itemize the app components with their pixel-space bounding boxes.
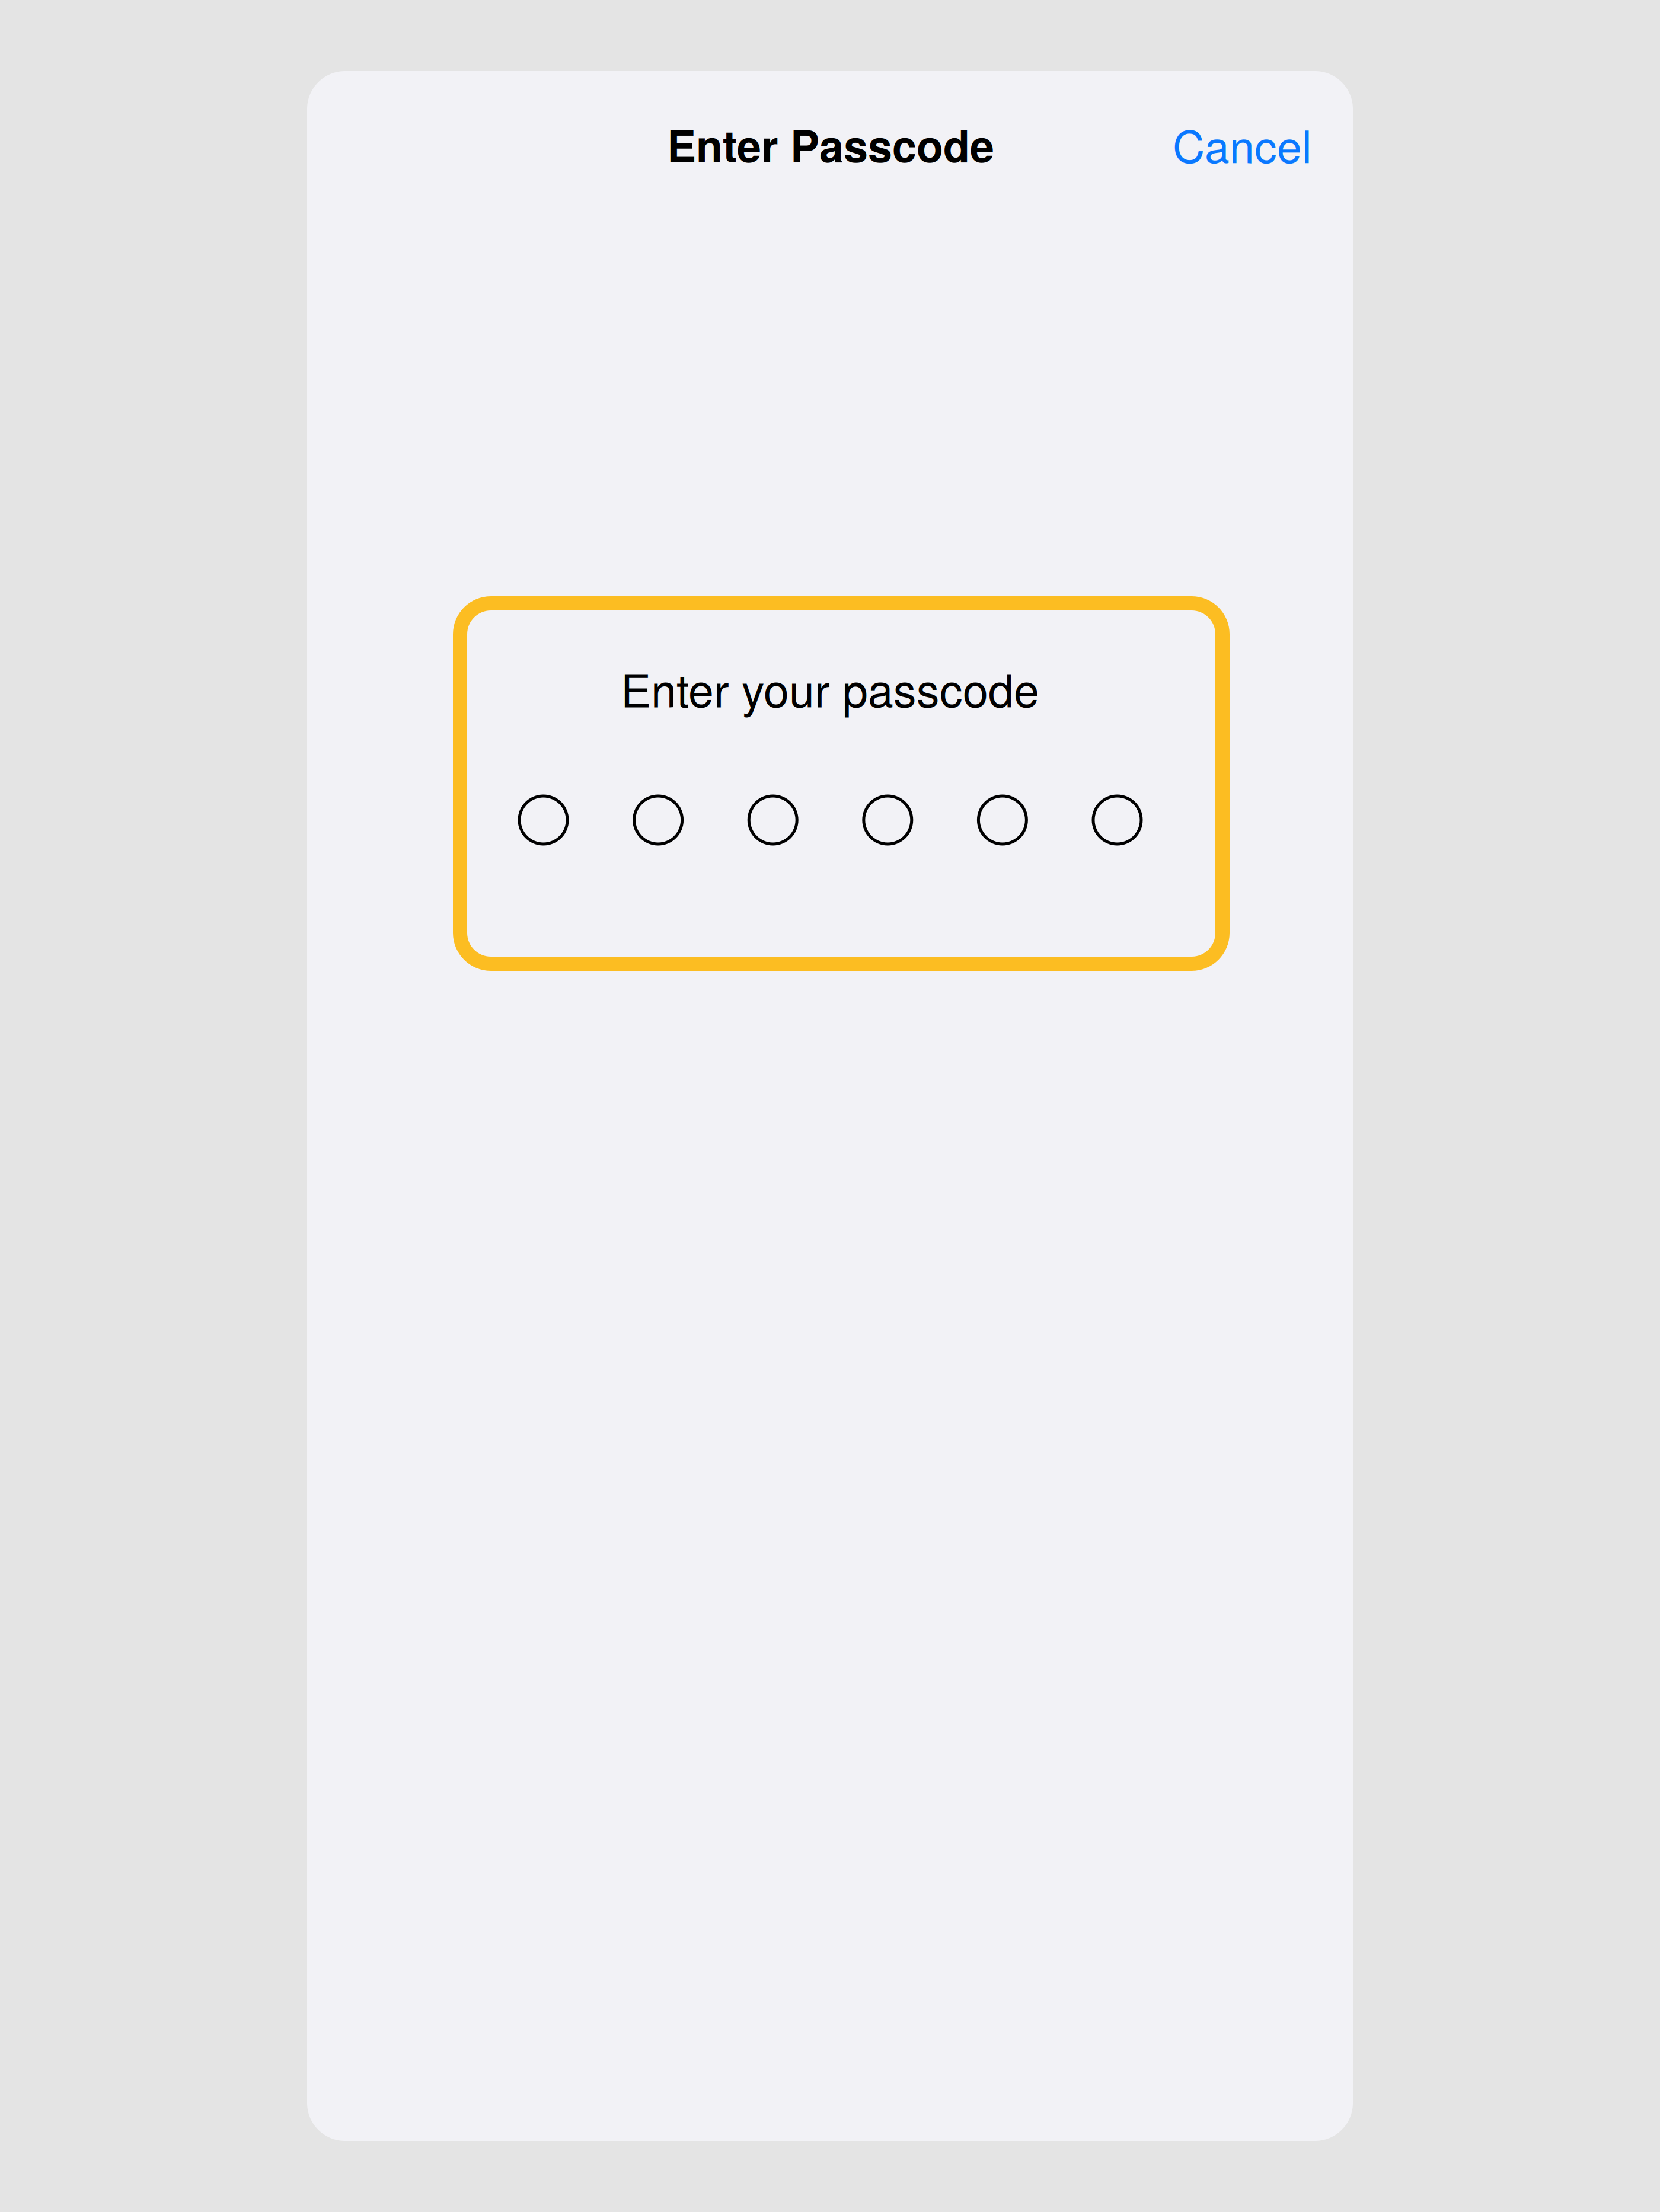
staticText: Cancel <box>1173 112 1312 176</box>
staticText: Enter Passcode <box>667 113 994 176</box>
button[interactable]: Cancel <box>1173 112 1312 176</box>
staticText: Enter your passcode <box>621 655 1039 720</box>
button[interactable]: Enter your passcode <box>460 603 1222 964</box>
